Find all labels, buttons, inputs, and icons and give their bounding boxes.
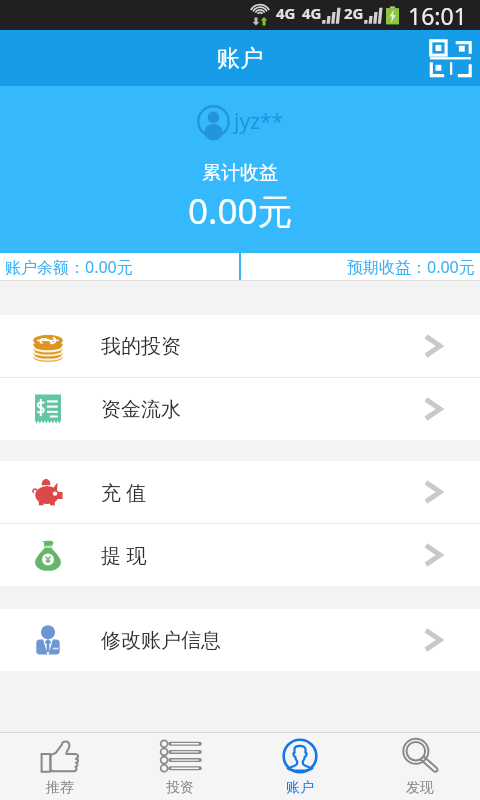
staticText: 账户 <box>217 44 263 73</box>
button[interactable]: 我的投资 <box>0 315 480 377</box>
staticText: 0.00元 <box>188 187 293 235</box>
staticText: 账户 <box>286 779 314 797</box>
staticText: 修改账户信息 <box>101 628 221 653</box>
button[interactable]: 投资 <box>120 733 240 800</box>
staticText: 投资 <box>166 779 194 797</box>
button[interactable]: 账户 <box>240 733 360 800</box>
staticText: jyz** <box>234 107 284 136</box>
button[interactable]: 充 值 <box>0 461 480 523</box>
staticText: 账户余额：0.00元 <box>5 256 133 278</box>
staticText: 累计收益 <box>202 161 278 185</box>
button[interactable]: 修改账户信息 <box>0 609 480 671</box>
staticText: 推荐 <box>46 779 74 797</box>
button[interactable]: 资金流水 <box>0 378 480 440</box>
staticText: 2G <box>344 3 364 23</box>
staticText: 4G <box>302 3 322 23</box>
staticText: 资金流水 <box>101 397 181 422</box>
button[interactable]: Scan QR code <box>424 30 476 86</box>
staticText: 16:01 <box>408 0 467 30</box>
button[interactable]: 发现 <box>360 733 480 800</box>
staticText: 提 现 <box>101 542 147 569</box>
staticText: 预期收益：0.00元 <box>347 256 475 278</box>
button[interactable]: 提 现 <box>0 524 480 586</box>
staticText: 充 值 <box>101 479 147 506</box>
button[interactable]: 推荐 <box>0 733 120 800</box>
staticText: 发现 <box>406 779 434 797</box>
staticText: 4G <box>276 3 296 23</box>
staticText: 我的投资 <box>101 334 181 359</box>
